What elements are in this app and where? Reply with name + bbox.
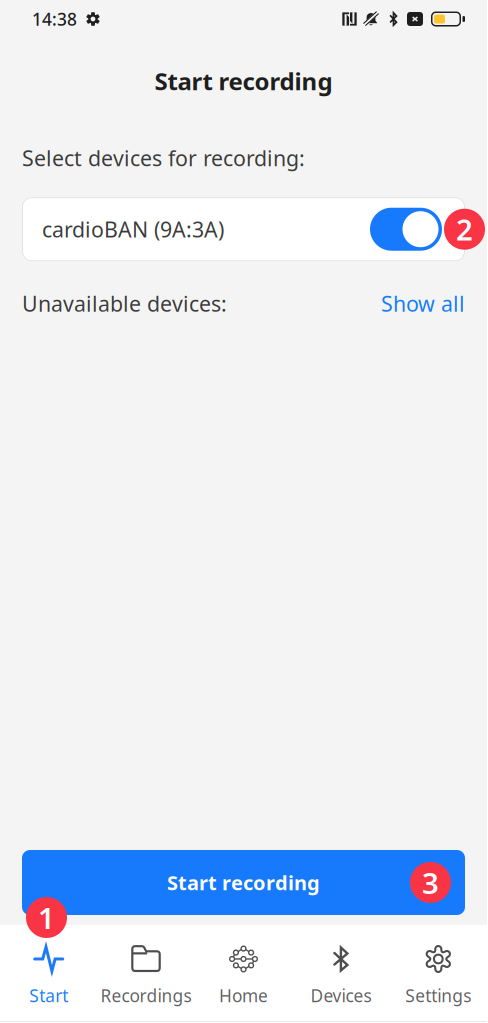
staticText: Settings bbox=[405, 984, 471, 1007]
button[interactable]: Recordings bbox=[97, 919, 195, 1023]
staticText: 2 bbox=[456, 210, 473, 249]
staticText: Devices bbox=[310, 984, 371, 1007]
staticText: Show all bbox=[381, 289, 465, 317]
button[interactable]: Home bbox=[195, 919, 292, 1023]
button[interactable]: Devices bbox=[292, 919, 390, 1023]
staticText: Start bbox=[29, 984, 68, 1007]
staticText: 1 bbox=[38, 898, 55, 937]
staticText: Home bbox=[219, 984, 268, 1007]
staticText: Unavailable devices: bbox=[22, 289, 227, 317]
staticText: 14:38 bbox=[32, 7, 77, 30]
button[interactable]: Settings bbox=[390, 919, 487, 1023]
button[interactable]: Start bbox=[0, 919, 97, 1023]
button[interactable]: Start recording bbox=[22, 850, 465, 915]
staticText: Recordings bbox=[101, 984, 192, 1007]
button[interactable]: Show all bbox=[381, 289, 465, 317]
staticText: Start recording bbox=[154, 65, 332, 97]
staticText: 3 bbox=[422, 863, 439, 902]
button[interactable]: Toggle cardioBAN (9A:3A) bbox=[370, 208, 442, 251]
staticText: cardioBAN (9A:3A) bbox=[42, 215, 224, 243]
staticText: Select devices for recording: bbox=[22, 144, 305, 172]
staticText: Start recording bbox=[167, 869, 320, 896]
